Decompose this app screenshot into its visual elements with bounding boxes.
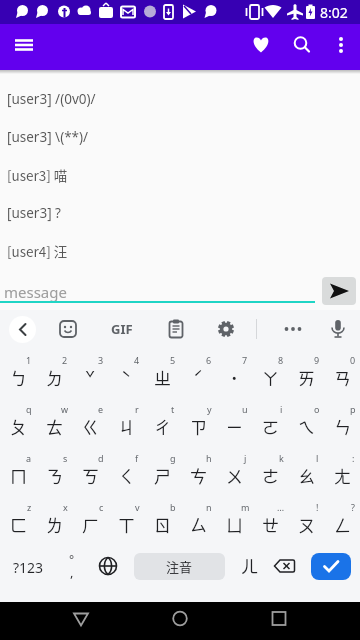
button[interactable] <box>144 451 180 499</box>
button[interactable] <box>212 315 240 343</box>
button[interactable] <box>252 353 288 401</box>
staticText: 8:02 <box>320 3 348 22</box>
staticText: x <box>63 501 68 513</box>
staticText: ? <box>351 501 355 513</box>
button[interactable] <box>324 402 360 450</box>
button[interactable] <box>0 80 360 118</box>
staticText: p <box>350 403 356 415</box>
button[interactable] <box>104 315 140 343</box>
staticText: 7 <box>242 354 248 366</box>
button[interactable] <box>36 353 72 401</box>
button[interactable] <box>72 451 108 499</box>
button[interactable] <box>322 277 356 305</box>
button[interactable] <box>324 451 360 499</box>
button[interactable] <box>279 315 307 343</box>
button[interactable] <box>108 353 144 401</box>
button[interactable] <box>252 500 288 548</box>
button[interactable] <box>144 402 180 450</box>
button[interactable] <box>0 194 360 232</box>
staticText: w <box>61 403 69 415</box>
button[interactable] <box>72 500 108 548</box>
button[interactable] <box>9 316 36 343</box>
button[interactable] <box>324 500 360 548</box>
staticText: ㄔ <box>154 414 171 439</box>
button[interactable] <box>144 353 180 401</box>
button[interactable] <box>180 402 216 450</box>
staticText: b <box>170 501 176 513</box>
button[interactable] <box>162 315 190 343</box>
button[interactable] <box>0 118 360 156</box>
button[interactable] <box>36 451 72 499</box>
button[interactable] <box>0 402 36 450</box>
button[interactable] <box>180 451 216 499</box>
staticText: ˙ <box>230 365 239 390</box>
staticText: o <box>314 403 320 415</box>
button[interactable] <box>216 451 252 499</box>
button[interactable] <box>0 548 56 588</box>
button[interactable] <box>162 603 198 639</box>
button[interactable] <box>288 500 324 548</box>
button[interactable] <box>0 451 36 499</box>
staticText: 0 <box>350 354 356 366</box>
button[interactable] <box>216 500 252 548</box>
button[interactable] <box>144 500 180 548</box>
staticText: ㄓ <box>154 365 171 390</box>
button[interactable] <box>8 29 40 61</box>
button[interactable] <box>0 232 360 270</box>
button[interactable] <box>108 451 144 499</box>
button[interactable] <box>324 353 360 401</box>
staticText: c <box>99 501 104 513</box>
staticText: [user3] ? <box>7 204 61 222</box>
button[interactable] <box>54 315 82 343</box>
button[interactable] <box>288 451 324 499</box>
button[interactable] <box>108 402 144 450</box>
button[interactable] <box>268 550 300 582</box>
staticText: 9 <box>314 354 320 366</box>
button[interactable] <box>232 548 266 588</box>
button[interactable] <box>216 402 252 450</box>
button[interactable] <box>0 353 36 401</box>
staticText: [user3] 喵 <box>7 165 68 185</box>
staticText: i <box>280 403 283 415</box>
staticText: [user4] 汪 <box>7 241 68 261</box>
button[interactable]: 注音 <box>134 553 225 580</box>
button[interactable] <box>180 500 216 548</box>
staticText: 4 <box>134 354 140 366</box>
button[interactable] <box>252 402 288 450</box>
staticText: ㄩ <box>226 512 243 537</box>
staticText: message <box>4 282 67 302</box>
button[interactable] <box>94 550 124 582</box>
button[interactable] <box>245 29 277 61</box>
button[interactable] <box>0 156 360 194</box>
button[interactable] <box>63 603 99 639</box>
staticText: t <box>171 403 175 415</box>
button[interactable] <box>324 315 352 343</box>
button[interactable] <box>325 29 357 61</box>
button[interactable] <box>288 353 324 401</box>
staticText: 6 <box>206 354 212 366</box>
staticText: ㄒ <box>118 512 135 537</box>
button[interactable] <box>216 353 252 401</box>
button[interactable] <box>36 500 72 548</box>
button[interactable] <box>36 402 72 450</box>
button[interactable] <box>286 29 318 61</box>
staticText: ㄗ <box>190 414 207 439</box>
button[interactable] <box>108 500 144 548</box>
staticText: k <box>279 452 284 464</box>
button[interactable] <box>180 353 216 401</box>
staticText: GIF <box>111 320 133 338</box>
button[interactable] <box>56 548 90 588</box>
button[interactable] <box>0 500 36 548</box>
button[interactable] <box>288 402 324 450</box>
button[interactable] <box>72 402 108 450</box>
staticText: ㄜ <box>262 463 279 488</box>
button[interactable] <box>252 451 288 499</box>
staticText: ° <box>69 551 75 567</box>
button[interactable] <box>311 553 351 580</box>
staticText: n <box>206 501 212 513</box>
button[interactable] <box>261 603 297 639</box>
staticText: 8 <box>278 354 284 366</box>
staticText: y <box>207 403 212 415</box>
button[interactable] <box>72 353 108 401</box>
staticText: : <box>352 452 355 464</box>
